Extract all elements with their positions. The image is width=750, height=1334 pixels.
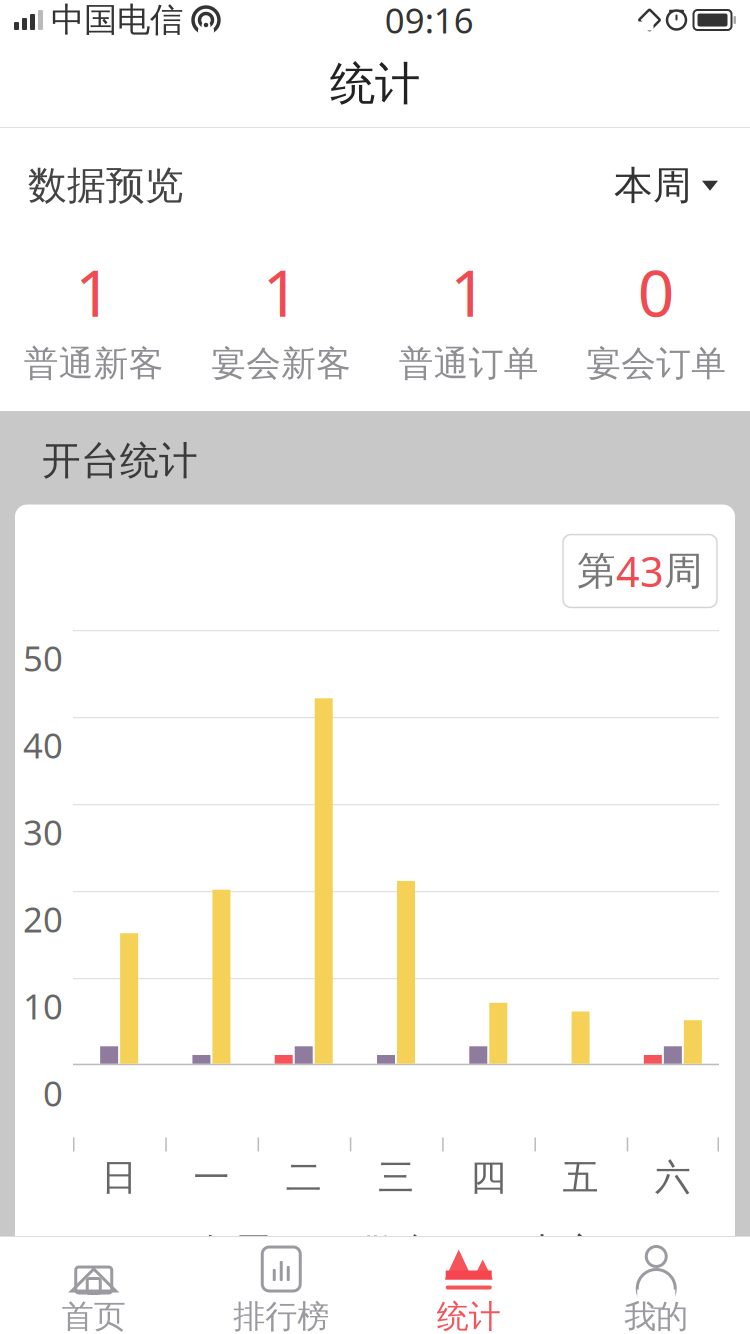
staticText: 首页 bbox=[62, 1297, 126, 1334]
staticText: 1 bbox=[263, 249, 300, 334]
staticText: 1 bbox=[450, 249, 487, 334]
staticText: 包厢 bbox=[198, 1230, 270, 1274]
staticText: 三 bbox=[378, 1155, 414, 1200]
button[interactable]: 第 bbox=[563, 535, 717, 607]
staticText: 43 bbox=[616, 544, 664, 598]
staticText: 中国电信 bbox=[51, 0, 183, 40]
staticText: 六 bbox=[655, 1155, 691, 1200]
staticText: 日 bbox=[101, 1155, 137, 1200]
button[interactable]: 本周 bbox=[610, 156, 722, 215]
button[interactable]: 统计 bbox=[375, 1237, 562, 1334]
staticText: 开台统计 bbox=[42, 437, 198, 485]
staticText: 20 bbox=[23, 896, 63, 942]
staticText: 统计 bbox=[437, 1297, 501, 1334]
staticText: 我的 bbox=[624, 1297, 688, 1334]
staticText: 1 bbox=[75, 249, 112, 334]
staticText: 周 bbox=[664, 547, 703, 595]
staticText: 0 bbox=[43, 1070, 63, 1116]
staticText: 0 bbox=[638, 249, 675, 334]
staticText: 40 bbox=[23, 722, 63, 768]
staticText: 宴会新客 bbox=[211, 342, 351, 385]
button[interactable]: 我的 bbox=[562, 1237, 750, 1334]
button[interactable]: 排行榜 bbox=[187, 1237, 375, 1334]
staticText: 数据预览 bbox=[28, 162, 184, 209]
staticText: 本周 bbox=[614, 162, 692, 209]
staticText: 一 bbox=[193, 1155, 229, 1200]
staticText: 50 bbox=[23, 635, 63, 681]
staticText: 排行榜 bbox=[233, 1297, 329, 1334]
staticText: 统计 bbox=[330, 56, 420, 112]
button[interactable]: 首页 bbox=[0, 1237, 187, 1334]
staticText: 订单渠道统计 bbox=[42, 1326, 276, 1334]
staticText: 二 bbox=[286, 1155, 322, 1200]
staticText: 第 bbox=[577, 547, 616, 595]
staticText: 30 bbox=[23, 809, 63, 855]
staticText: 09:16 bbox=[385, 0, 474, 43]
staticText: 普通新客 bbox=[24, 342, 164, 385]
staticText: 卡座 bbox=[526, 1230, 598, 1274]
staticText: 四 bbox=[470, 1155, 506, 1200]
staticText: 10 bbox=[23, 983, 63, 1029]
staticText: 宴会订单 bbox=[586, 342, 726, 385]
staticText: 普通订单 bbox=[399, 342, 539, 385]
staticText: 散台 bbox=[362, 1230, 434, 1274]
staticText: 五 bbox=[563, 1155, 599, 1200]
